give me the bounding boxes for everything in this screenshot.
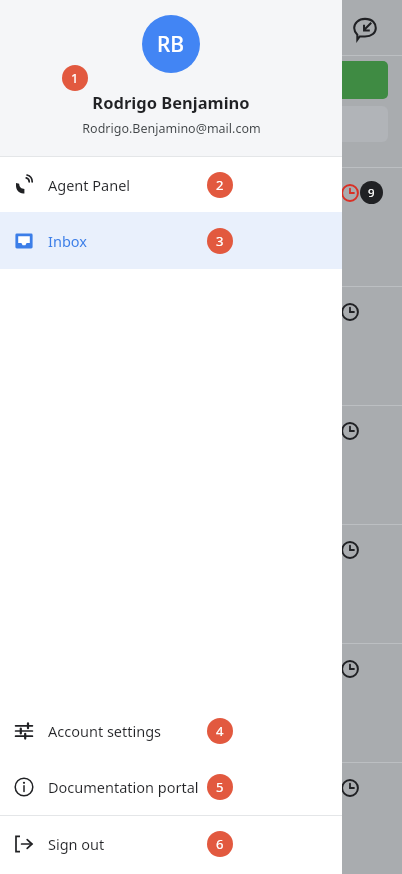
staticText: 1 <box>71 69 79 87</box>
staticText: 2 <box>216 176 224 194</box>
staticText: Agent Panel <box>48 175 131 195</box>
button[interactable]: Sign out <box>0 816 342 872</box>
button[interactable]: Agent Panel <box>0 157 342 212</box>
staticText: Documentation portal <box>48 777 199 797</box>
staticText: Rodrigo.Benjamino@mail.com <box>82 120 261 137</box>
button[interactable]: RB <box>142 15 200 73</box>
staticText: Rodrigo Benjamino <box>92 91 250 113</box>
staticText: RB <box>157 30 185 59</box>
staticText: Sign out <box>48 834 105 854</box>
other: Messages <box>353 16 377 40</box>
staticText: 4 <box>216 722 224 740</box>
staticText: 3 <box>216 232 224 250</box>
staticText: Account settings <box>48 721 162 741</box>
button[interactable]: Documentation portal <box>0 759 342 815</box>
staticText: 5 <box>216 778 224 796</box>
staticText: 6 <box>216 835 224 853</box>
button[interactable]: Expand <box>268 61 388 99</box>
staticText: 9 <box>368 185 375 201</box>
button[interactable]: Inbox <box>0 212 342 269</box>
staticText: Inbox <box>48 231 87 251</box>
button[interactable]: Account settings <box>0 703 342 759</box>
